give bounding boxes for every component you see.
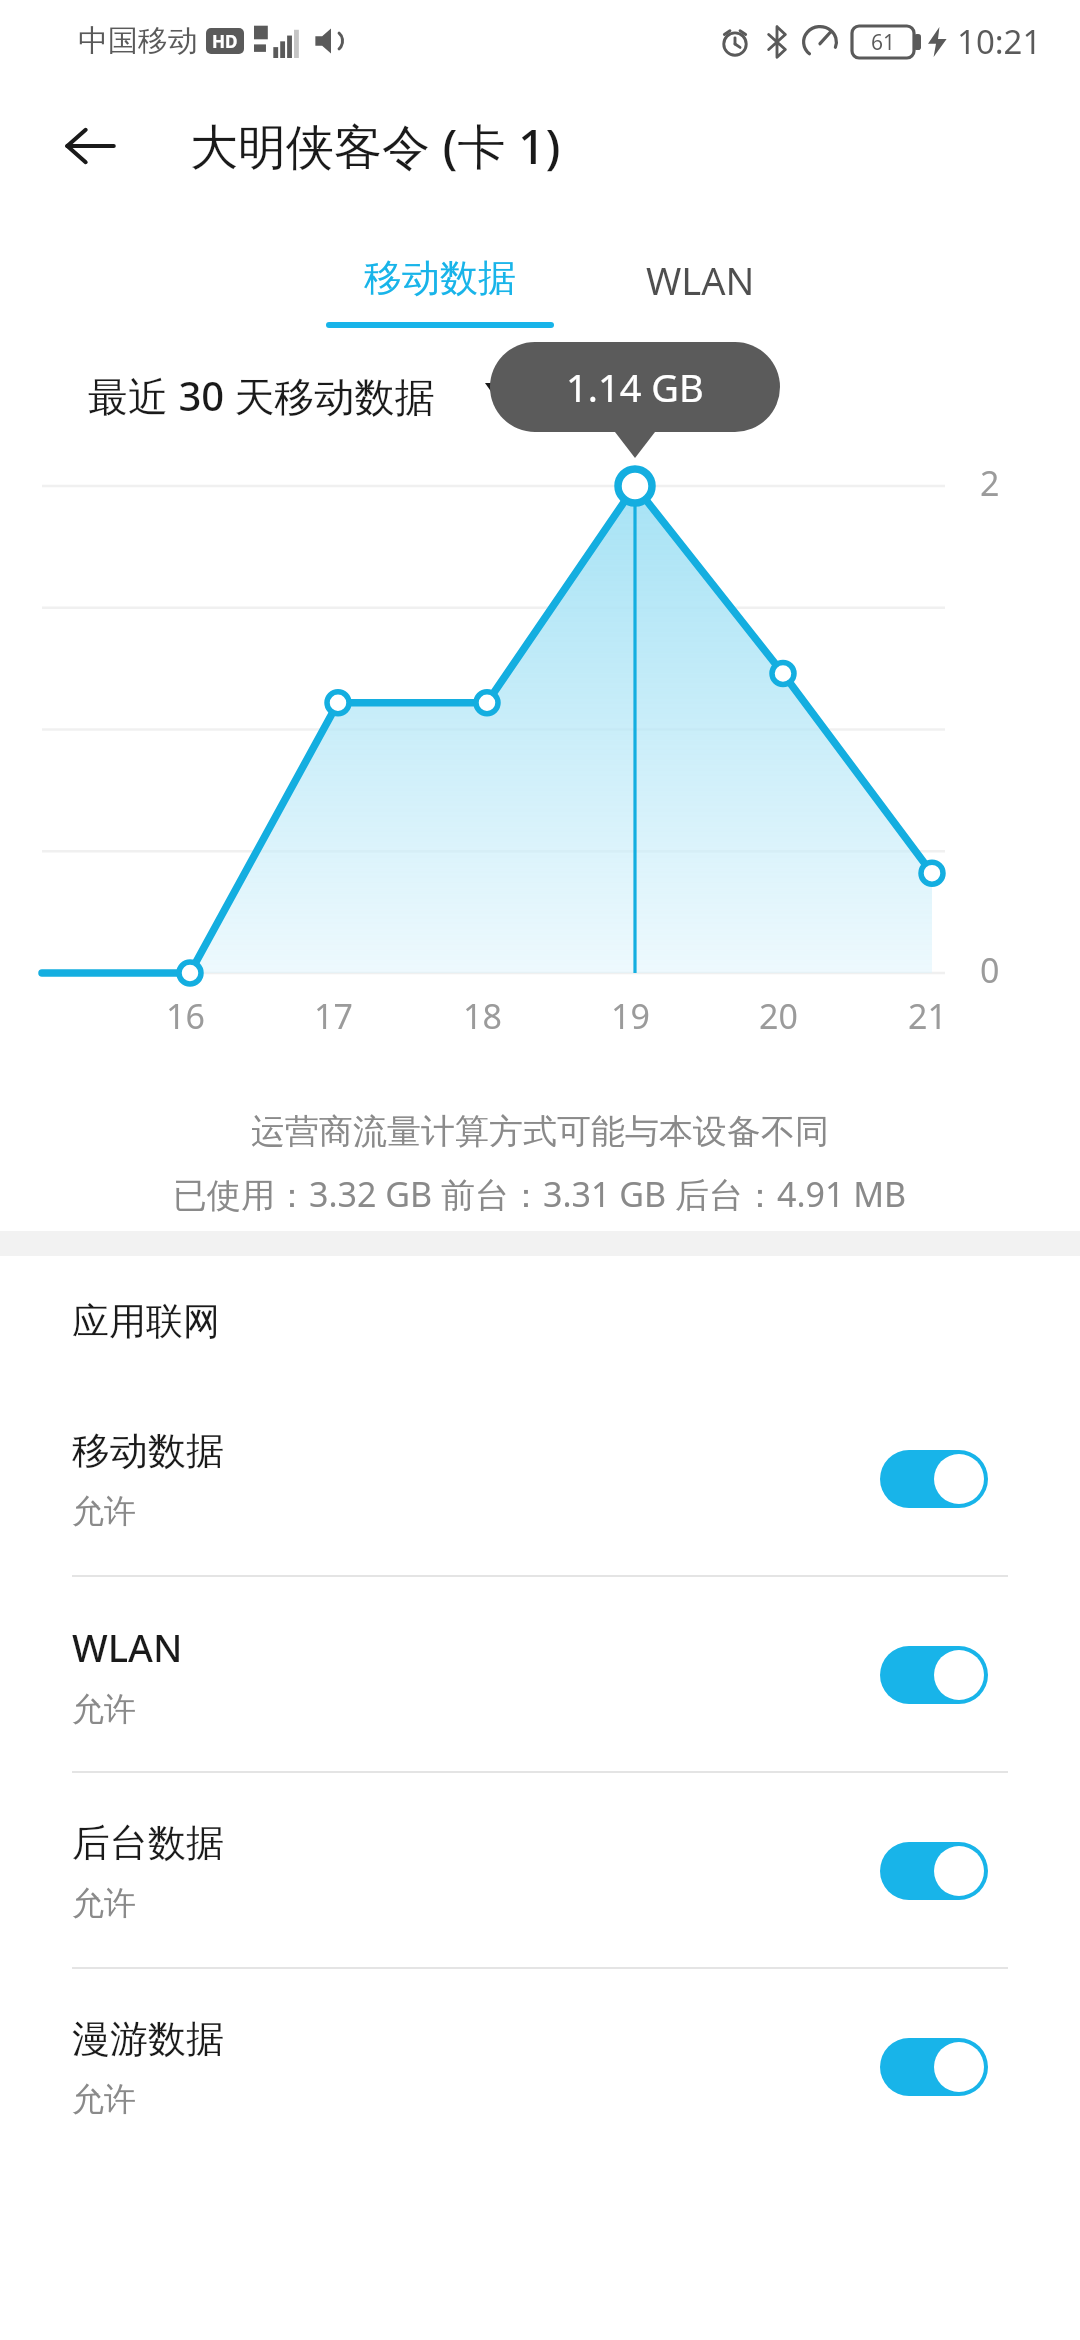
- staticText: 21: [908, 993, 947, 1039]
- staticText: 18: [463, 993, 502, 1039]
- staticText: 大明侠客令 (卡 1): [190, 113, 561, 179]
- button[interactable]: 后台数据 开关: [880, 1842, 988, 1900]
- button[interactable]: 漫游数据: [0, 1969, 1080, 2165]
- staticText: 应用联网: [72, 1298, 220, 1345]
- staticText: 允许: [72, 2079, 136, 2119]
- staticText: 0: [980, 947, 1000, 993]
- staticText: 漫游数据: [72, 2015, 224, 2063]
- button[interactable]: 移动数据: [300, 210, 580, 328]
- staticText: 16: [166, 993, 205, 1039]
- button[interactable]: WLAN: [570, 210, 830, 328]
- staticText: 最近 30 天移动数据: [88, 368, 435, 423]
- staticText: 1.14 GB: [566, 361, 704, 413]
- staticText: 10:21: [957, 19, 1042, 64]
- staticText: 移动数据: [72, 1427, 224, 1475]
- staticText: 移动数据: [364, 254, 516, 302]
- staticText: 2: [980, 460, 1000, 506]
- staticText: WLAN: [646, 254, 755, 306]
- staticText: 19: [611, 993, 650, 1039]
- staticText: 61: [871, 28, 896, 57]
- button[interactable]: 漫游数据 开关: [880, 2038, 988, 2096]
- staticText: 中国移动: [78, 22, 198, 60]
- button[interactable]: 后台数据: [0, 1773, 1080, 1969]
- staticText: 允许: [72, 1883, 136, 1923]
- button[interactable]: 最近 30 天移动数据: [0, 340, 1080, 450]
- staticText: 允许: [72, 1491, 136, 1531]
- staticText: WLAN: [72, 1621, 183, 1673]
- button[interactable]: WLAN: [0, 1577, 1080, 1773]
- staticText: 运营商流量计算方式可能与本设备不同: [251, 1110, 829, 1153]
- staticText: 已使用：3.32 GB 前台：3.31 GB 后台：4.91 MB: [173, 1171, 907, 1217]
- staticText: 17: [314, 993, 353, 1039]
- staticText: HD: [212, 30, 238, 53]
- button[interactable]: Back: [48, 104, 132, 188]
- button[interactable]: 移动数据: [0, 1381, 1080, 1577]
- staticText: 后台数据: [72, 1819, 224, 1867]
- staticText: 20: [759, 993, 798, 1039]
- button[interactable]: WLAN 开关: [880, 1646, 988, 1704]
- staticText: 允许: [72, 1689, 136, 1729]
- button[interactable]: 移动数据 开关: [880, 1450, 988, 1508]
